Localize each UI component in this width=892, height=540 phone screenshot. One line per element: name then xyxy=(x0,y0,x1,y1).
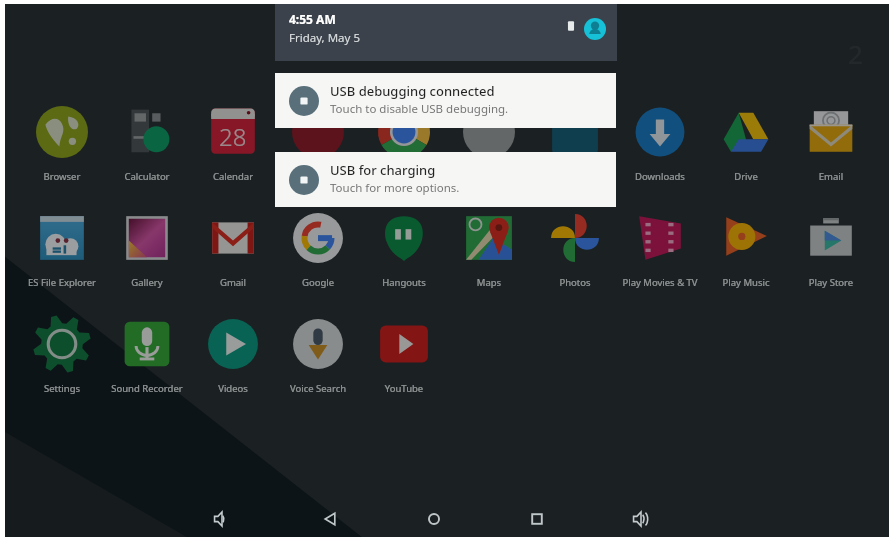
button[interactable]: Videos xyxy=(191,318,275,395)
staticText: Play Store xyxy=(789,276,873,289)
staticText: YouTube xyxy=(362,382,446,395)
staticText: Friday, May 5 xyxy=(289,30,361,46)
button[interactable]: Calculator xyxy=(105,106,189,183)
staticText: Calculator xyxy=(105,170,189,183)
button[interactable]: Photos xyxy=(533,212,617,289)
button[interactable]: Sound Recorder xyxy=(105,318,189,395)
button[interactable]: USB for charging xyxy=(275,152,616,207)
staticText: Calendar xyxy=(191,170,275,183)
button[interactable]: Email xyxy=(789,106,873,183)
button[interactable]: 4:55 AM xyxy=(275,4,617,61)
button[interactable]: Volume up xyxy=(617,495,665,540)
staticText: Contacts xyxy=(533,170,617,183)
button[interactable]: Camera xyxy=(276,106,360,183)
button[interactable]: Gmail xyxy=(191,212,275,289)
staticText: Chrome xyxy=(362,170,446,183)
staticText: Sound Recorder xyxy=(105,382,189,395)
staticText: Photos xyxy=(533,276,617,289)
staticText: Play Movies & TV xyxy=(618,276,702,289)
staticText: Maps xyxy=(447,276,531,289)
staticText: Touch for more options. xyxy=(330,180,460,196)
button[interactable]: YouTube xyxy=(362,318,446,395)
staticText: USB for charging xyxy=(330,161,436,179)
staticText: Browser xyxy=(20,170,104,183)
staticText: Downloads xyxy=(618,170,702,183)
button[interactable]: Drive xyxy=(704,106,788,183)
staticText: Gallery xyxy=(105,276,189,289)
button[interactable]: Downloads xyxy=(618,106,702,183)
staticText: 28 xyxy=(219,120,247,153)
button[interactable]: Voice Search xyxy=(276,318,360,395)
button[interactable]: Recents xyxy=(513,495,561,540)
button[interactable]: Maps xyxy=(447,212,531,289)
staticText: 4:55 AM xyxy=(289,11,336,27)
staticText: Play Music xyxy=(704,276,788,289)
staticText: Gmail xyxy=(191,276,275,289)
staticText: Touch to disable USB debugging. xyxy=(330,101,509,117)
staticText: USB debugging connected xyxy=(330,82,495,100)
staticText: Email xyxy=(789,170,873,183)
button[interactable]: Settings xyxy=(20,318,104,395)
button[interactable]: Browser xyxy=(20,106,104,183)
staticText: Google xyxy=(276,276,360,289)
button[interactable]: User profile xyxy=(584,18,606,40)
staticText: Voice Search xyxy=(276,382,360,395)
button[interactable]: Play Movies & TV xyxy=(618,212,702,289)
staticText: ES File Explorer xyxy=(20,276,104,289)
button[interactable]: Chrome xyxy=(362,106,446,183)
button[interactable]: Clock xyxy=(447,106,531,183)
button[interactable]: Back xyxy=(306,495,354,540)
button[interactable]: Play Music xyxy=(704,212,788,289)
staticText: Settings xyxy=(20,382,104,395)
button[interactable]: 28 xyxy=(191,106,275,183)
staticText: Drive xyxy=(704,170,788,183)
button[interactable]: Home xyxy=(410,495,458,540)
button[interactable]: Hangouts xyxy=(362,212,446,289)
button[interactable]: Play Store xyxy=(789,212,873,289)
button[interactable]: ES File Explorer xyxy=(20,212,104,289)
button[interactable]: Google xyxy=(276,212,360,289)
button[interactable]: Volume down xyxy=(198,495,246,540)
staticText: Videos xyxy=(191,382,275,395)
button[interactable]: Contacts xyxy=(533,106,617,183)
button[interactable]: USB debugging connected xyxy=(275,73,616,128)
staticText: Hangouts xyxy=(362,276,446,289)
button[interactable]: Gallery xyxy=(105,212,189,289)
staticText: Camera xyxy=(276,170,360,183)
